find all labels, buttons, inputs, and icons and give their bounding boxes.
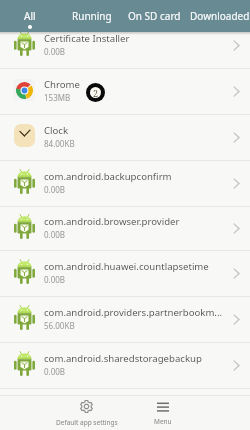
staticText: com.android.browser.provider [44, 215, 180, 228]
button[interactable]: Downloaded [185, 0, 250, 32]
other: Default app settings [80, 400, 93, 413]
button[interactable]: Menu [137, 396, 189, 430]
staticText: Chrome [44, 78, 80, 91]
staticText: 0.00B [44, 184, 66, 195]
staticText: com.android.providers.partnerbookm... [44, 306, 223, 319]
staticText: Certificate Installer [44, 32, 130, 45]
button[interactable]: Chrome [0, 68, 250, 114]
button[interactable]: com.android.providers.partnerbookm... [0, 296, 250, 342]
staticText: com.android.huawei.countlapsetime [44, 260, 209, 273]
button[interactable]: Default app settings [36, 396, 137, 430]
staticText: Running [72, 9, 112, 23]
staticText: Clock [44, 124, 69, 137]
staticText: Menu [154, 417, 172, 426]
button[interactable]: Running [59, 0, 124, 32]
staticText: 0.00B [44, 366, 66, 377]
staticText: 153MB [44, 92, 71, 103]
button[interactable]: com.android.huawei.countlapsetime [0, 250, 250, 296]
staticText: 56.00KB [44, 320, 75, 331]
button[interactable]: All [0, 0, 59, 32]
staticText: 0.00B [44, 274, 66, 285]
button[interactable]: Clock [0, 114, 250, 160]
staticText: com.android.backupconfirm [44, 170, 172, 183]
button[interactable]: com.android.sharedstoragebackup [0, 342, 250, 388]
staticText: 0.00B [44, 229, 66, 240]
staticText: Downloaded [190, 9, 250, 23]
staticText: Default app settings [56, 418, 118, 427]
staticText: 2 [93, 87, 99, 98]
staticText: On SD card [128, 9, 181, 23]
button[interactable]: com.android.backupconfirm [0, 160, 250, 206]
staticText: All [24, 9, 36, 23]
other: Menu [157, 401, 169, 412]
button[interactable]: On SD card [124, 0, 185, 32]
button[interactable]: com.android.browser.provider [0, 206, 250, 250]
staticText: 0.00B [44, 46, 66, 57]
staticText: com.android.sharedstoragebackup [44, 352, 202, 365]
staticText: 84.00KB [44, 138, 75, 149]
button[interactable]: Certificate Installer [0, 22, 250, 68]
